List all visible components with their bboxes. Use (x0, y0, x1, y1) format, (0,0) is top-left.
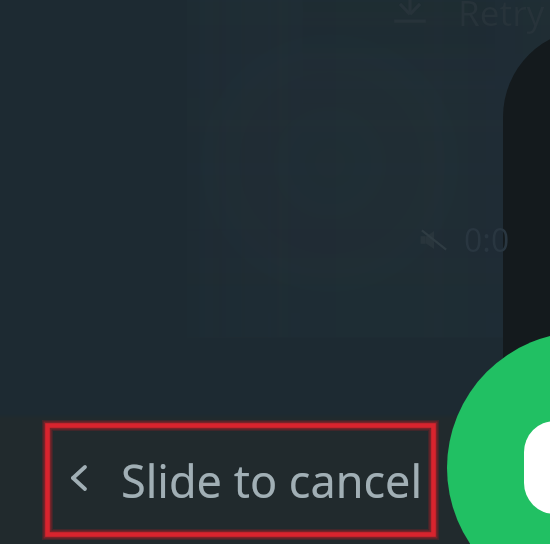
staticText: Slide to cancel (121, 450, 423, 506)
button[interactable]: Record voice message (447, 332, 550, 544)
button[interactable]: Slide to cancel (71, 450, 423, 506)
staticText: 0:0 (464, 218, 510, 262)
button[interactable]: Retry download (392, 0, 428, 24)
